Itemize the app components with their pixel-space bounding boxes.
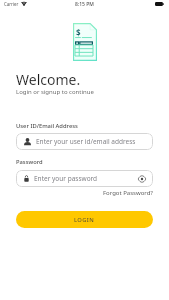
staticText: Password [16,158,43,166]
staticText: User ID/Email Address [16,122,78,130]
staticText: Welcome. [16,70,81,89]
button[interactable]: Enter your user id/email address [16,133,153,150]
staticText: LOGIN [74,216,95,224]
staticText: Enter your password [34,174,98,183]
other: Show password [138,176,146,182]
staticText: Login or signup to continue [16,88,94,96]
button[interactable]: Forgot Password? [103,189,153,197]
staticText: Carrier [4,1,19,7]
staticText: 8:15 PM [75,1,94,8]
staticText: Enter your user id/email address [36,137,136,146]
button[interactable]: Enter your password [16,170,153,187]
staticText: Forgot Password? [103,189,153,197]
other: Invoice logo [73,23,97,61]
button[interactable]: LOGIN [16,211,153,228]
staticText: $ [76,27,81,38]
